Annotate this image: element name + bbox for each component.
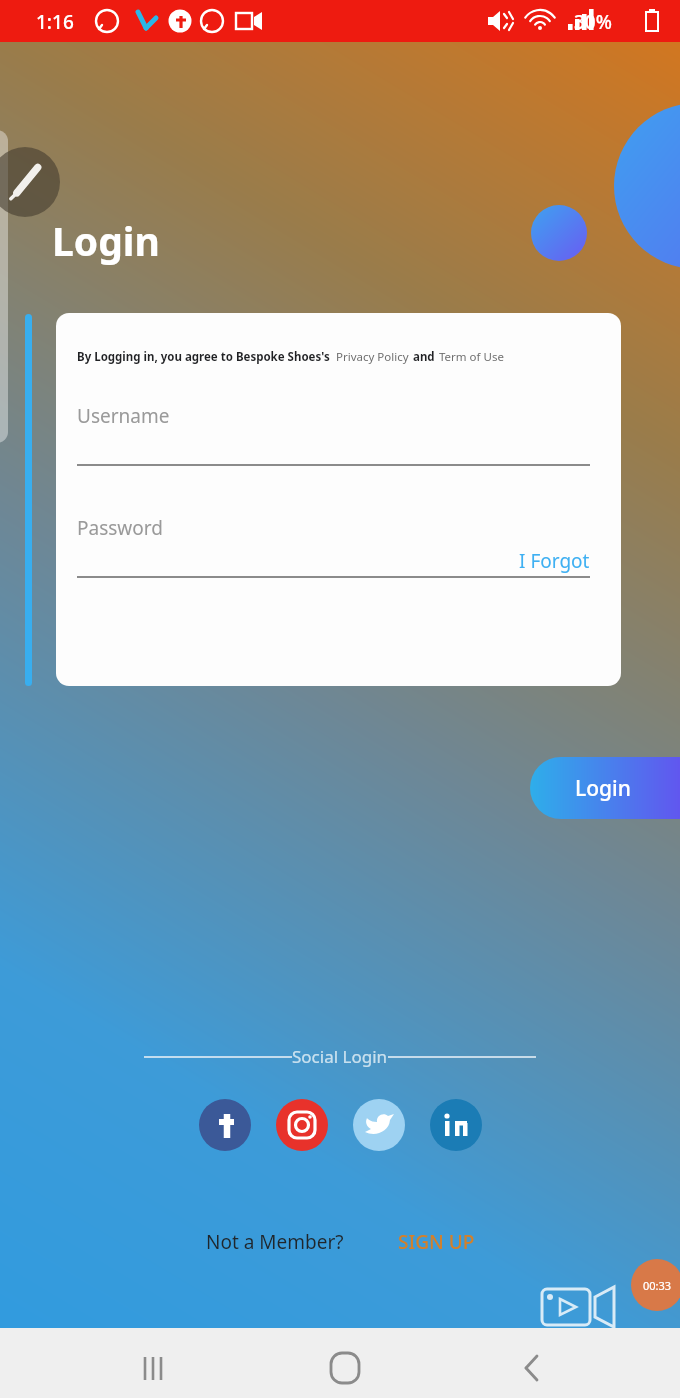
staticText: By Logging in, you agree to Bespoke Shoe… [77, 349, 330, 365]
staticText: SIGN UP [398, 1229, 475, 1255]
button[interactable]: Facebook [199, 1099, 251, 1151]
button[interactable]: Instagram [276, 1099, 328, 1151]
staticText: Username [77, 403, 170, 429]
button[interactable]: LinkedIn [430, 1099, 482, 1151]
button[interactable]: I Forgot [519, 548, 590, 574]
button[interactable]: Recents [110, 1328, 190, 1398]
button[interactable]: SIGN UP [398, 1229, 475, 1255]
button[interactable]: Privacy Policy [336, 349, 409, 365]
staticText: and [413, 349, 435, 365]
staticText: Password [77, 515, 163, 541]
button[interactable]: Twitter [353, 1099, 405, 1151]
button[interactable]: Password [77, 500, 590, 578]
staticText: Login [52, 214, 160, 267]
staticText: Not a Member? [206, 1229, 344, 1255]
staticText: 1:16 [36, 9, 74, 35]
staticText: 00:33 [643, 1278, 672, 1293]
button[interactable]: Back [490, 1328, 570, 1398]
button[interactable]: Home [300, 1328, 380, 1398]
staticText: 30% [574, 9, 612, 35]
button[interactable]: Term of Use [439, 349, 504, 365]
button[interactable]: Username [77, 388, 590, 466]
staticText: Social Login [292, 1045, 388, 1068]
button[interactable]: Login [530, 757, 680, 819]
staticText: Login [575, 774, 631, 803]
staticText: V RECORDER [497, 1350, 636, 1381]
button[interactable]: Edit [0, 147, 60, 217]
